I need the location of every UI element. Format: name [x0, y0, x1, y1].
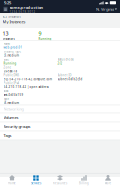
staticText: My Instances [2, 19, 25, 24]
staticText: Status checks [57, 58, 73, 61]
staticText: t3.medium [3, 101, 18, 105]
staticText: Name [3, 42, 10, 45]
button[interactable]: Services [24, 175, 48, 185]
button[interactable]: Billing [72, 175, 96, 185]
staticText: Instances [2, 37, 14, 41]
staticText: Running [3, 62, 16, 65]
staticText: 54.210.118.42 | open address [3, 85, 48, 89]
staticText: 9 [38, 30, 41, 37]
staticText: AMI [3, 89, 8, 93]
staticText: Billing [79, 181, 89, 185]
staticText: Resources [53, 181, 67, 185]
staticText: Services [31, 181, 41, 185]
staticText: subnet-0a1b2c3d [57, 77, 82, 81]
staticText: web-prod-01 [3, 46, 22, 49]
button[interactable]: Region: N. Virginia [96, 7, 117, 12]
button[interactable]: acme-production [3, 5, 44, 14]
staticText: 5:25 [4, 0, 11, 5]
button[interactable]: Home [0, 175, 24, 185]
staticText: Security groups [3, 124, 30, 129]
staticText: Zone [3, 66, 11, 69]
staticText: Tags [3, 133, 11, 138]
staticText: Public DNS [3, 73, 18, 77]
staticText: Subnet ID [57, 73, 71, 77]
staticText: 2/2 [57, 62, 62, 65]
staticText: ec2-54-210-118-42.compute.com [3, 77, 51, 81]
staticText: Instance type [3, 50, 21, 53]
button[interactable]: Security groups [0, 122, 120, 131]
staticText: EC2 Instances [2, 15, 20, 18]
staticText: 13 [2, 30, 8, 37]
staticText: Networking [3, 106, 23, 112]
button[interactable]: Tags [0, 131, 120, 140]
staticText: t3.medium [3, 54, 18, 57]
staticText: Public IPv4 [3, 81, 19, 85]
staticText: acme-production [10, 5, 44, 10]
staticText: us-east-1a [3, 69, 16, 73]
button[interactable]: Volumes [0, 113, 120, 122]
staticText: N. Virginia [96, 7, 114, 12]
staticText: ami-0c55b159 [3, 93, 23, 97]
button[interactable]: Resources [48, 175, 72, 185]
staticText: Volumes [3, 115, 18, 120]
staticText: State [3, 58, 9, 61]
button[interactable]: More [96, 175, 120, 185]
staticText: Running [38, 37, 51, 41]
staticText: Type [3, 97, 9, 101]
staticText: 1234-5678-9012 [10, 10, 36, 14]
staticText: Home [8, 181, 16, 185]
staticText: More [104, 181, 111, 185]
